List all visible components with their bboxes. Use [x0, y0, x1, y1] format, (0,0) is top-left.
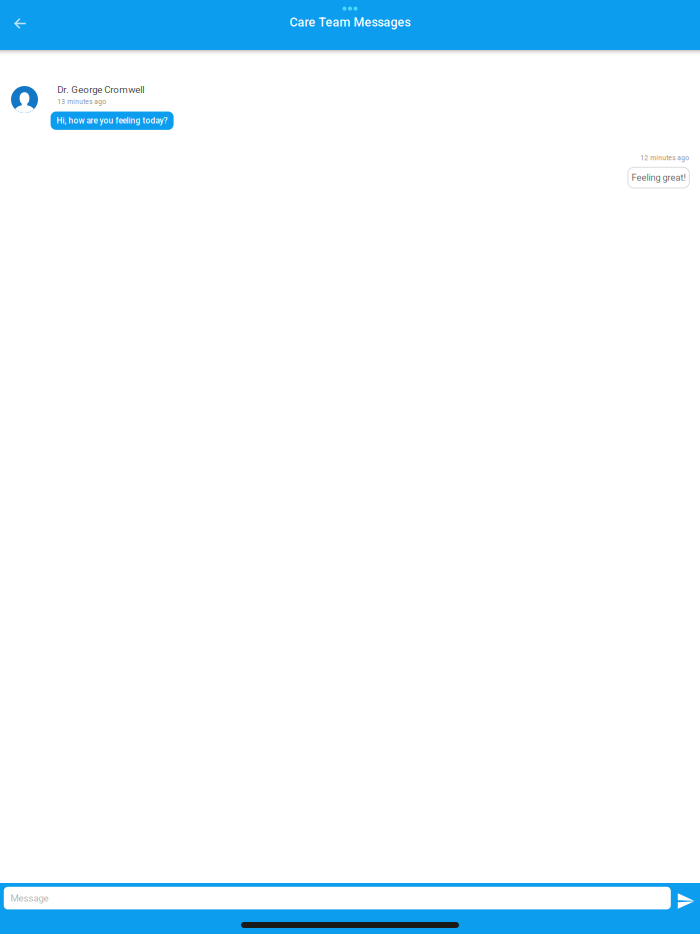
staticText: 13 minutes ago	[57, 98, 106, 106]
staticText: Hi, how are you feeling today?	[57, 116, 168, 126]
staticText: Feeling great!	[632, 172, 686, 183]
button[interactable]: Message	[4, 887, 671, 909]
button[interactable]: Back	[0, 0, 40, 42]
staticText: 12 minutes ago	[640, 154, 689, 162]
staticText: Message	[11, 892, 49, 904]
staticText: Dr. George Cromwell	[57, 84, 144, 95]
staticText: Care Team Messages	[289, 15, 410, 29]
button[interactable]: Send	[670, 883, 700, 915]
